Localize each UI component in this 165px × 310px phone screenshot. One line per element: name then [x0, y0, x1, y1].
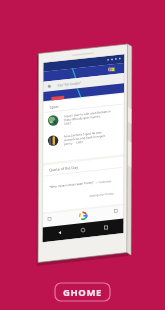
button[interactable]: GHOME — [0, 0, 165, 310]
button[interactable]: Google Home app phone preview — [0, 0, 165, 310]
